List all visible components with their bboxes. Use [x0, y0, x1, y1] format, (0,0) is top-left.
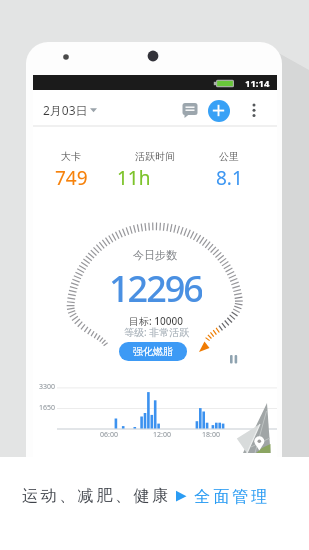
button[interactable]: 运动、减肥、健康 — [22, 485, 271, 507]
staticText: 749 — [55, 165, 88, 189]
staticText: 今日步数 — [133, 248, 177, 262]
staticText: 目标: 10000 — [129, 314, 183, 328]
staticText: 18:00 — [202, 430, 220, 440]
staticText: 11:14 — [245, 77, 270, 89]
staticText: 11h — [117, 165, 151, 189]
staticText: 大卡 — [61, 150, 81, 163]
button[interactable] — [224, 349, 241, 366]
button[interactable] — [39, 97, 149, 123]
staticText: 2月03日 — [43, 102, 88, 118]
button[interactable] — [243, 97, 265, 123]
staticText: 8.1 — [216, 165, 243, 189]
button[interactable] — [176, 97, 204, 123]
staticText: 1650 — [39, 403, 56, 413]
staticText: 3300 — [39, 382, 56, 392]
button[interactable]: 强化燃脂 — [119, 342, 187, 361]
staticText: 全面管理 — [187, 485, 271, 507]
staticText: 公里 — [219, 150, 239, 163]
staticText: 运动、减肥、健康 — [22, 486, 171, 506]
staticText: 等级: 非常活跃 — [124, 325, 190, 339]
button[interactable] — [208, 100, 230, 122]
staticText: 强化燃脂 — [133, 345, 173, 358]
staticText: 12:00 — [153, 430, 171, 440]
staticText: 活跃时间 — [135, 150, 175, 163]
staticText: 12296 — [109, 264, 202, 310]
staticText: 06:00 — [100, 430, 118, 440]
